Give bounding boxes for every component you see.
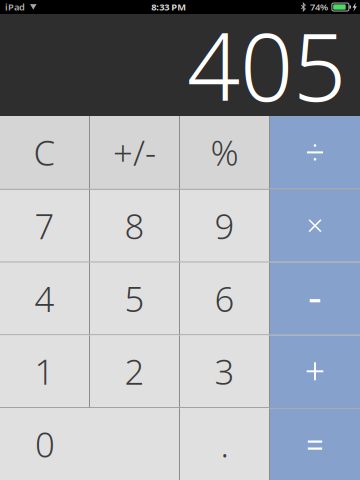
button[interactable]: 4	[0, 263, 89, 334]
staticText: 3	[214, 348, 234, 394]
button[interactable]: 6	[180, 263, 269, 334]
button[interactable]: Subtract	[270, 263, 360, 334]
staticText: 0	[35, 421, 55, 467]
button[interactable]: 1	[0, 335, 89, 407]
button[interactable]: 7	[0, 190, 89, 262]
button[interactable]: 0	[0, 408, 179, 480]
button[interactable]: 3	[180, 335, 269, 407]
staticText: 8	[124, 203, 144, 249]
button[interactable]: Multiply	[270, 190, 360, 262]
button[interactable]: 2	[90, 335, 179, 407]
staticText: 74%	[310, 1, 328, 13]
button[interactable]: Add	[270, 335, 360, 407]
button[interactable]: 8	[90, 190, 179, 262]
staticText: 8:33 PM	[151, 1, 186, 13]
staticText: 4	[34, 275, 54, 321]
staticText: 9	[214, 203, 234, 249]
button[interactable]: Divide	[270, 116, 360, 189]
staticText: C	[33, 129, 55, 175]
staticText: 2	[124, 348, 144, 394]
button[interactable]: .	[180, 408, 269, 480]
button[interactable]: +/-	[90, 116, 179, 189]
staticText: +/-	[113, 129, 156, 175]
button[interactable]: %	[180, 116, 269, 189]
staticText: 6	[214, 275, 234, 321]
button[interactable]: Equals	[270, 408, 360, 480]
staticText: 405	[187, 3, 346, 127]
staticText: 5	[124, 275, 144, 321]
button[interactable]: 5	[90, 263, 179, 334]
staticText: 1	[34, 348, 54, 394]
staticText: .	[220, 421, 228, 467]
staticText: %	[210, 129, 238, 175]
button[interactable]: 9	[180, 190, 269, 262]
button[interactable]: C	[0, 116, 89, 189]
staticText: 7	[34, 203, 54, 249]
staticText: iPad	[5, 1, 25, 13]
